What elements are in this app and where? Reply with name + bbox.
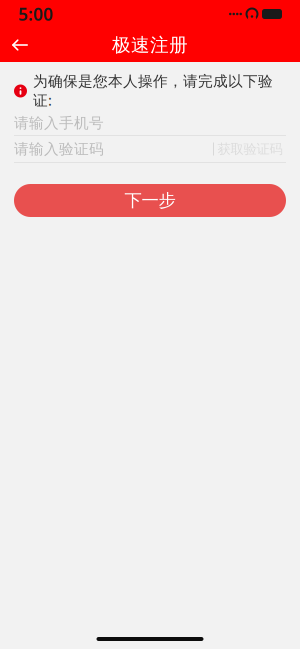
button[interactable]: 返回 bbox=[0, 28, 40, 62]
staticText: 下一步 bbox=[124, 190, 175, 211]
button[interactable]: 下一步 bbox=[14, 184, 286, 217]
staticText: 请输入手机号 bbox=[14, 114, 104, 132]
staticText: 5:00 bbox=[18, 2, 53, 25]
staticText: 请输入验证码 bbox=[14, 140, 104, 158]
staticText: 为确保是您本人操作，请完成以下验证: bbox=[33, 72, 273, 110]
staticText: 极速注册 bbox=[112, 33, 188, 56]
button[interactable]: 获取验证码 bbox=[214, 137, 286, 161]
staticText: 获取验证码 bbox=[217, 141, 282, 157]
